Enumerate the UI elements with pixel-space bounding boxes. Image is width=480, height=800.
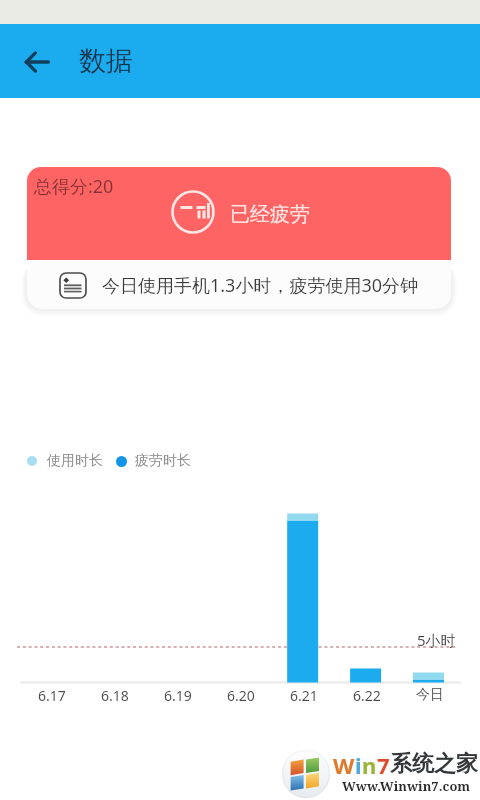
- staticText: 数据: [79, 44, 133, 78]
- staticText: 使用时长: [47, 452, 103, 470]
- staticText: 总得分:20: [34, 174, 114, 199]
- staticText: 疲劳时长: [135, 452, 191, 470]
- button[interactable]: 总得分:20: [27, 167, 451, 260]
- staticText: n: [362, 750, 377, 780]
- staticText: 今日使用手机1.3小时，疲劳使用30分钟: [102, 273, 419, 298]
- staticText: 5小时: [417, 630, 456, 650]
- staticText: 7: [377, 750, 390, 780]
- staticText: Www.Winwin7.com: [342, 777, 471, 795]
- button[interactable]: 今日使用手机1.3小时，疲劳使用30分钟: [27, 260, 451, 309]
- staticText: 6.22: [353, 686, 381, 705]
- staticText: 6.21: [290, 686, 318, 705]
- staticText: 6.18: [101, 686, 129, 705]
- staticText: i: [355, 750, 362, 780]
- staticText: 今日: [416, 686, 444, 704]
- staticText: 6.17: [38, 686, 66, 705]
- staticText: W: [333, 750, 355, 780]
- staticText: 系统之家: [390, 750, 478, 778]
- staticText: 已经疲劳: [230, 202, 310, 227]
- staticText: 6.19: [164, 686, 192, 705]
- staticText: 6.20: [227, 686, 255, 705]
- button[interactable]: Back: [0, 24, 74, 98]
